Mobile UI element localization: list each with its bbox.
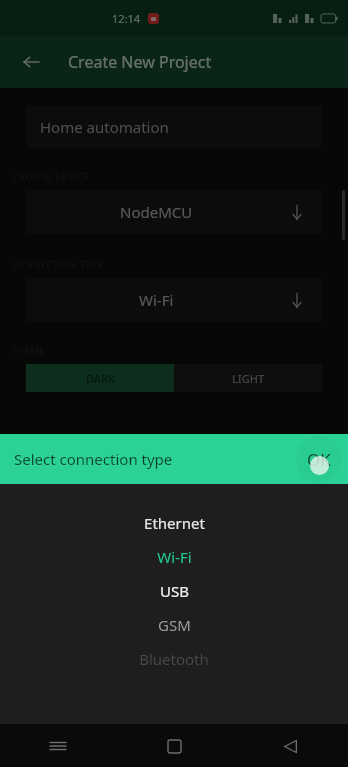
button[interactable]: Bluetooth xyxy=(0,642,348,676)
staticText: CONNECTION TYPE xyxy=(12,258,103,270)
staticText: USB xyxy=(160,581,189,601)
staticText: LIGHT xyxy=(232,371,265,386)
staticText: Ethernet xyxy=(144,513,205,533)
staticText: DARK xyxy=(86,371,115,386)
staticText: Wi-Fi xyxy=(157,547,192,567)
button[interactable]: Home xyxy=(116,725,232,767)
button[interactable]: Recent apps xyxy=(0,725,116,767)
staticText: GSM xyxy=(158,615,191,635)
button[interactable]: LIGHT xyxy=(174,364,322,392)
staticText: NodeMCU xyxy=(120,202,193,222)
staticText: THEME xyxy=(12,344,45,356)
button[interactable]: Wi-Fi xyxy=(26,278,322,322)
staticText: OK xyxy=(307,448,331,471)
button[interactable]: Back xyxy=(14,45,48,79)
button[interactable]: DARK xyxy=(26,364,174,392)
button[interactable]: Ethernet xyxy=(0,506,348,540)
staticText: 12:14 xyxy=(112,11,141,26)
staticText: Create New Project xyxy=(68,51,212,73)
staticText: Select connection type xyxy=(14,449,173,469)
staticText: Bluetooth xyxy=(139,649,209,669)
button[interactable]: OK xyxy=(296,436,342,482)
button[interactable]: Home automation xyxy=(26,106,322,148)
button[interactable]: Wi-Fi xyxy=(0,540,348,574)
staticText: Home automation xyxy=(40,117,169,137)
button[interactable]: GSM xyxy=(0,608,348,642)
button[interactable]: USB xyxy=(0,574,348,608)
staticText: Wi-Fi xyxy=(139,290,174,310)
staticText: CHOOSE DEVICE xyxy=(12,170,90,182)
button[interactable]: NodeMCU xyxy=(26,190,322,234)
button[interactable]: Back xyxy=(232,725,348,767)
